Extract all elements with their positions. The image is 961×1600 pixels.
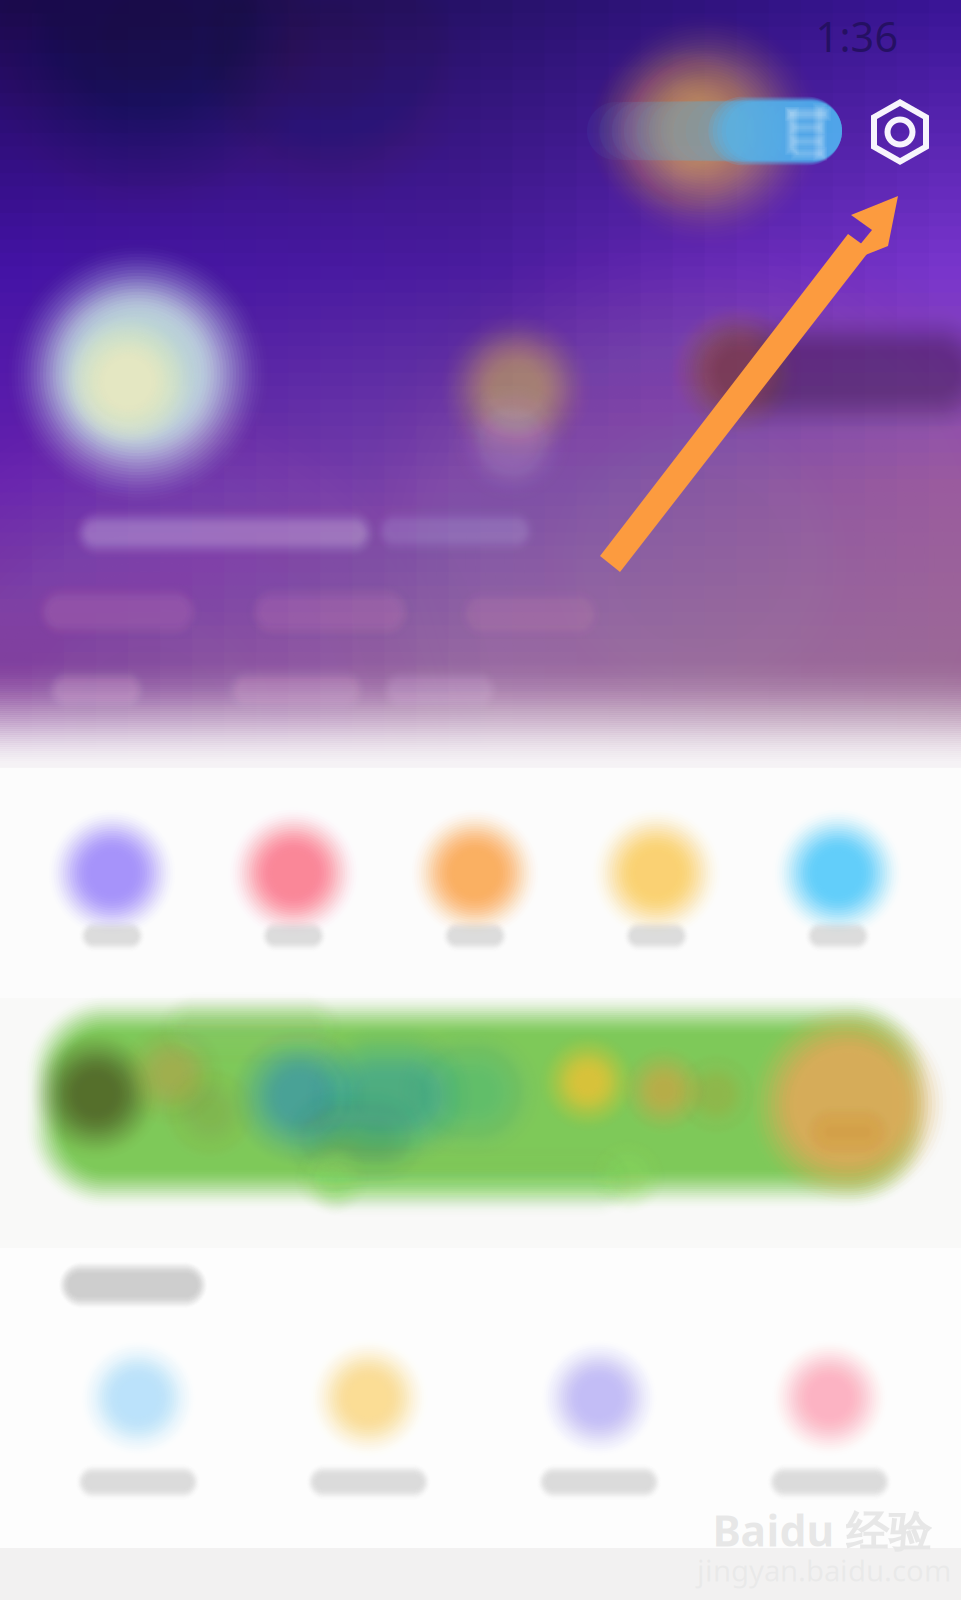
button[interactable]: Service 4 — [0, 0, 961, 1600]
button[interactable]: Shortcut 1 — [0, 0, 961, 1600]
button[interactable]: Shortcut 2 — [0, 0, 961, 1600]
button[interactable]: Shortcut 4 — [0, 0, 961, 1600]
button[interactable]: Service 1 — [0, 0, 961, 1600]
button[interactable]: Service 3 — [0, 0, 961, 1600]
staticText: 1:36 — [815, 9, 898, 63]
button[interactable]: Promotion banner — [0, 0, 961, 1600]
button[interactable]: Shortcut 3 — [0, 0, 961, 1600]
button[interactable]: Settings — [857, 89, 943, 175]
staticText: Baidu 经验 — [712, 1502, 931, 1558]
button[interactable]: Service 2 — [0, 0, 961, 1600]
button[interactable]: Shortcut 5 — [0, 0, 961, 1600]
